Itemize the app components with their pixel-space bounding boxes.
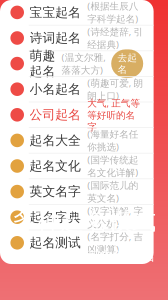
staticText: 宝宝起名	[37, 6, 101, 25]
button[interactable]: 起名字典	[0, 256, 168, 287]
staticText: 起名大全	[37, 166, 101, 185]
button[interactable]: 诗词起名	[0, 32, 168, 63]
staticText: 多种起名模式	[12, 206, 156, 236]
button[interactable]: 萌趣起名	[0, 64, 168, 95]
button[interactable]: 英文名字	[0, 224, 168, 255]
staticText: (根据生辰八字科学起名)	[109, 0, 168, 31]
staticText: 大气, 正气等等好听的名字	[109, 121, 168, 166]
staticText: (汉字详解, 字义分析)	[109, 256, 168, 287]
staticText: (海量好名任你挑选)	[109, 160, 168, 191]
staticText: 起名文化	[37, 198, 101, 217]
staticText: (诗经楚辞, 引经据典)	[109, 32, 168, 63]
staticText: (国际范儿的英文名)	[109, 224, 168, 255]
staticText: 公司起名	[37, 134, 101, 153]
staticText: 英文名字	[37, 230, 101, 249]
staticText: (国学传统起名文化详解)	[109, 192, 168, 223]
staticText: 诗词起名	[37, 38, 101, 57]
staticText: (温文尔雅, 落落大方)	[77, 64, 132, 95]
button[interactable]: 起名文化	[0, 192, 168, 223]
button[interactable]: 小名起名	[0, 96, 168, 127]
staticText: 起名字典	[37, 262, 101, 281]
button[interactable]: 宝宝起名	[0, 0, 168, 31]
staticText: 诗词 四字名 英文名 小名	[13, 248, 155, 264]
staticText: 小名起名	[37, 102, 101, 121]
button[interactable]: 起名大全	[0, 160, 168, 191]
staticText: (萌趣可爱, 朗朗上口)	[109, 96, 168, 127]
staticText: 去起名	[147, 65, 168, 94]
staticText: 萌趣起名	[37, 60, 69, 99]
button[interactable]: 公司起名	[0, 128, 168, 159]
